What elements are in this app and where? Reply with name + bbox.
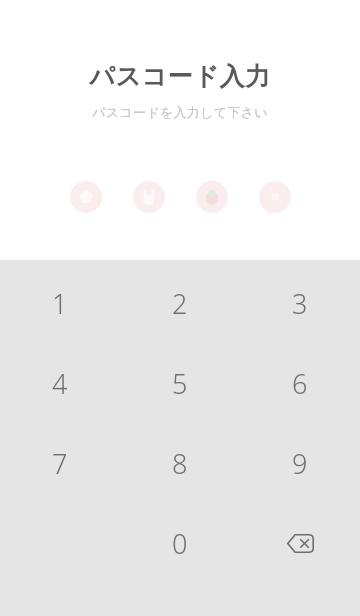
button[interactable]: 7 [0, 423, 120, 503]
button[interactable]: 9 [240, 423, 360, 503]
staticText: パスコード入力 [89, 61, 271, 92]
staticText: 0 [172, 525, 188, 562]
staticText: 6 [292, 365, 308, 402]
button[interactable]: 8 [120, 423, 240, 503]
staticText: 1 [52, 285, 68, 322]
button[interactable]: 5 [120, 343, 240, 423]
button[interactable]: Backspace [240, 503, 360, 583]
staticText: 2 [172, 285, 188, 322]
staticText: 3 [292, 285, 308, 322]
staticText: パスコードを入力して下さい [92, 104, 268, 120]
staticText: 9 [292, 445, 308, 482]
button[interactable]: 3 [240, 263, 360, 343]
staticText: 5 [172, 365, 188, 402]
button[interactable]: 6 [240, 343, 360, 423]
button[interactable]: 2 [120, 263, 240, 343]
staticText: 7 [52, 445, 68, 482]
staticText: 8 [172, 445, 188, 482]
button[interactable]: 4 [0, 343, 120, 423]
button[interactable]: 1 [0, 263, 120, 343]
staticText: 4 [52, 365, 68, 402]
button[interactable]: 0 [120, 503, 240, 583]
